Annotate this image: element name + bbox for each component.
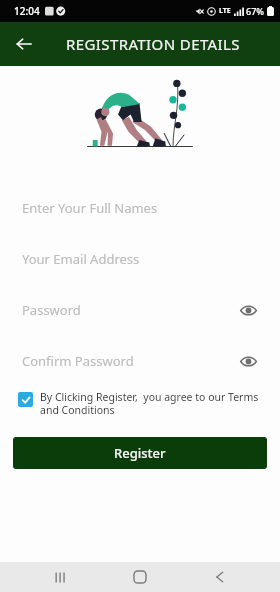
staticText: Confirm Password [22,352,134,370]
button[interactable]: Enter Your Full Names [0,182,280,233]
button[interactable]: Back [10,30,38,58]
button[interactable]: Show password [236,298,260,322]
button[interactable]: Back [200,562,240,592]
staticText: Password [22,301,81,319]
staticText: By Clicking Register, you agree to our T… [40,390,262,417]
staticText: 67% [246,5,264,17]
button[interactable]: Home [120,562,160,592]
staticText: REGISTRATION DETAILS [66,34,240,54]
staticText: Your Email Address [22,250,140,268]
button[interactable]: By Clicking Register, you agree to our T… [18,390,262,417]
button[interactable]: Password [0,284,280,335]
button[interactable]: Recent apps [40,562,80,592]
staticText: LTE [219,6,231,16]
staticText: Enter Your Full Names [22,199,158,217]
button[interactable]: Register [13,437,267,469]
button[interactable]: Show password [236,349,260,373]
button[interactable]: Your Email Address [0,233,280,284]
button[interactable]: Confirm Password [0,335,280,386]
staticText: 12:04 [14,4,40,18]
staticText: Register [114,444,166,462]
